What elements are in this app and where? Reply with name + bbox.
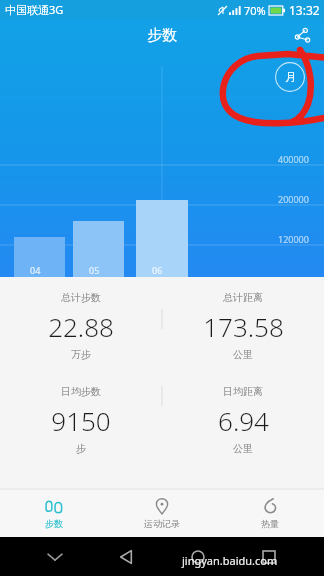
staticText: 200000 (278, 193, 309, 205)
staticText: 公里 (233, 348, 253, 361)
staticText: 22.88 (48, 309, 114, 344)
staticText: 运动记录 (144, 518, 180, 529)
button[interactable]: 总计步数 (0, 291, 162, 361)
button[interactable]: 热量 (216, 489, 324, 537)
button[interactable]: 日均步数 (0, 385, 162, 455)
button[interactable]: Recents (253, 541, 285, 573)
button[interactable]: Hide keyboard (39, 541, 71, 573)
staticText: 总计步数 (61, 291, 101, 304)
staticText: 120000 (278, 233, 309, 245)
staticText: 热量 (261, 518, 279, 529)
staticText: 06 (152, 264, 163, 276)
staticText: 70% (244, 3, 266, 18)
button[interactable]: 运动记录 (108, 489, 216, 537)
staticText: 13:32 (289, 2, 320, 18)
staticText: 6.94 (218, 403, 269, 438)
staticText: 公里 (233, 442, 253, 455)
staticText: 400000 (278, 153, 309, 165)
staticText: 173.58 (203, 309, 284, 344)
staticText: 05 (89, 264, 100, 276)
staticText: 日均步数 (61, 385, 101, 398)
staticText: 9150 (51, 403, 111, 438)
staticText: 步 (76, 442, 86, 455)
staticText: 日均距离 (223, 385, 263, 398)
staticText: 万步 (71, 348, 91, 361)
button[interactable]: 步数 (0, 489, 108, 537)
staticText: 步数 (147, 26, 177, 45)
button[interactable]: Home (182, 541, 214, 573)
staticText: 中国联通3G (5, 2, 64, 17)
button[interactable]: 月 (275, 62, 305, 92)
staticText: jingyan.baidu.com (182, 553, 278, 568)
staticText: 总计距离 (223, 291, 263, 304)
staticText: 步数 (45, 518, 63, 529)
button[interactable]: Back (110, 541, 142, 573)
button[interactable]: Share (289, 22, 315, 48)
staticText: 月 (285, 70, 296, 84)
staticText: 04 (30, 264, 41, 276)
button[interactable]: 日均距离 (162, 385, 324, 455)
button[interactable]: 总计距离 (162, 291, 324, 361)
